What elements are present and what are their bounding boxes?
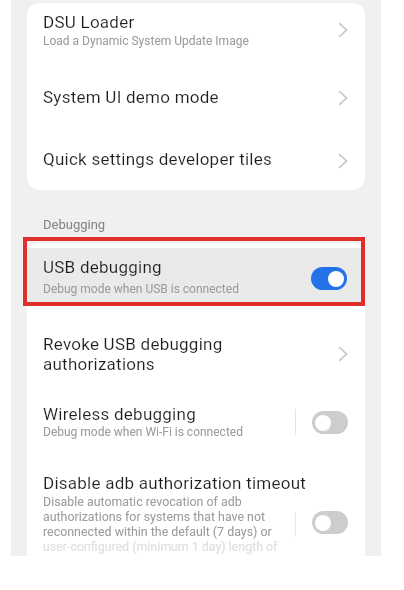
staticText: DSU Loader [43, 12, 135, 32]
staticText: Disable automatic revocation of adb auth… [43, 494, 272, 539]
staticText: Load a Dynamic System Update Image [43, 34, 249, 48]
button[interactable] [312, 411, 348, 434]
button[interactable]: USB debugging [27, 248, 365, 302]
button[interactable]: Disable adb authorization timeout [27, 455, 365, 556]
button[interactable] [312, 511, 348, 534]
button[interactable]: DSU Loader [27, 3, 365, 65]
staticText: Quick settings developer tiles [43, 149, 273, 169]
staticText: Debug mode when USB is connected [43, 282, 239, 296]
button[interactable]: Wireless debugging [27, 390, 365, 455]
staticText: Debug mode when Wi-Fi is connected [43, 425, 243, 439]
staticText: Revoke USB debugging authorizations [43, 334, 223, 374]
button[interactable]: System UI demo mode [27, 65, 365, 127]
button[interactable] [311, 267, 347, 290]
staticText: Disable adb authorization timeout [43, 473, 307, 493]
staticText: user-configured (minimum 1 day) length o… [43, 539, 278, 554]
staticText: USB debugging [43, 257, 162, 277]
staticText: System UI demo mode [43, 87, 219, 107]
staticText: Debugging [43, 217, 106, 232]
button[interactable]: Quick settings developer tiles [27, 127, 365, 190]
button[interactable]: Revoke USB debugging authorizations [27, 317, 365, 390]
staticText: Wireless debugging [43, 404, 196, 424]
